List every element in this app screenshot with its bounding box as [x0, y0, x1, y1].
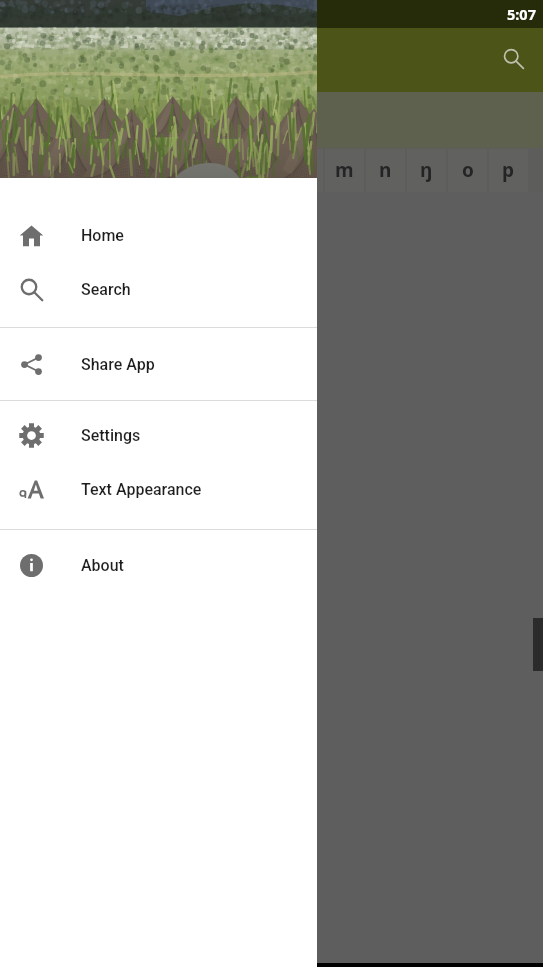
button[interactable]: Search [489, 34, 537, 82]
button[interactable]: Search [0, 262, 317, 316]
staticText: Settings [81, 426, 141, 445]
staticText: n [379, 157, 392, 183]
button[interactable]: m [325, 149, 364, 192]
button[interactable]: Settings [0, 408, 317, 462]
staticText: Share App [81, 355, 155, 374]
staticText: m [335, 157, 354, 183]
staticText: p [502, 157, 515, 183]
staticText: h [133, 157, 146, 183]
button[interactable]: Home [0, 208, 317, 262]
staticText: o [462, 157, 474, 183]
button[interactable]: l [284, 149, 323, 192]
staticText: j [219, 157, 225, 183]
button[interactable]: Share App [0, 337, 317, 391]
staticText: ŋ [420, 157, 433, 183]
button[interactable]: ŋ [407, 149, 446, 192]
staticText: Search [81, 280, 131, 299]
staticText: 5:07 [507, 4, 536, 24]
button[interactable]: j [202, 149, 241, 192]
staticText: About [81, 556, 124, 575]
staticText: Text Appearance [81, 480, 202, 499]
staticText: i [178, 157, 184, 183]
button[interactable]: Text Appearance [0, 462, 317, 516]
button[interactable]: n [366, 149, 405, 192]
button[interactable]: About [0, 538, 317, 592]
button[interactable]: k [243, 149, 282, 192]
button[interactable]: i [161, 149, 200, 192]
button[interactable]: o [448, 149, 487, 192]
staticText: Home [81, 226, 124, 245]
staticText: k [257, 157, 269, 183]
staticText: l [301, 157, 307, 183]
button[interactable]: p [489, 149, 528, 192]
button[interactable]: h [120, 149, 159, 192]
